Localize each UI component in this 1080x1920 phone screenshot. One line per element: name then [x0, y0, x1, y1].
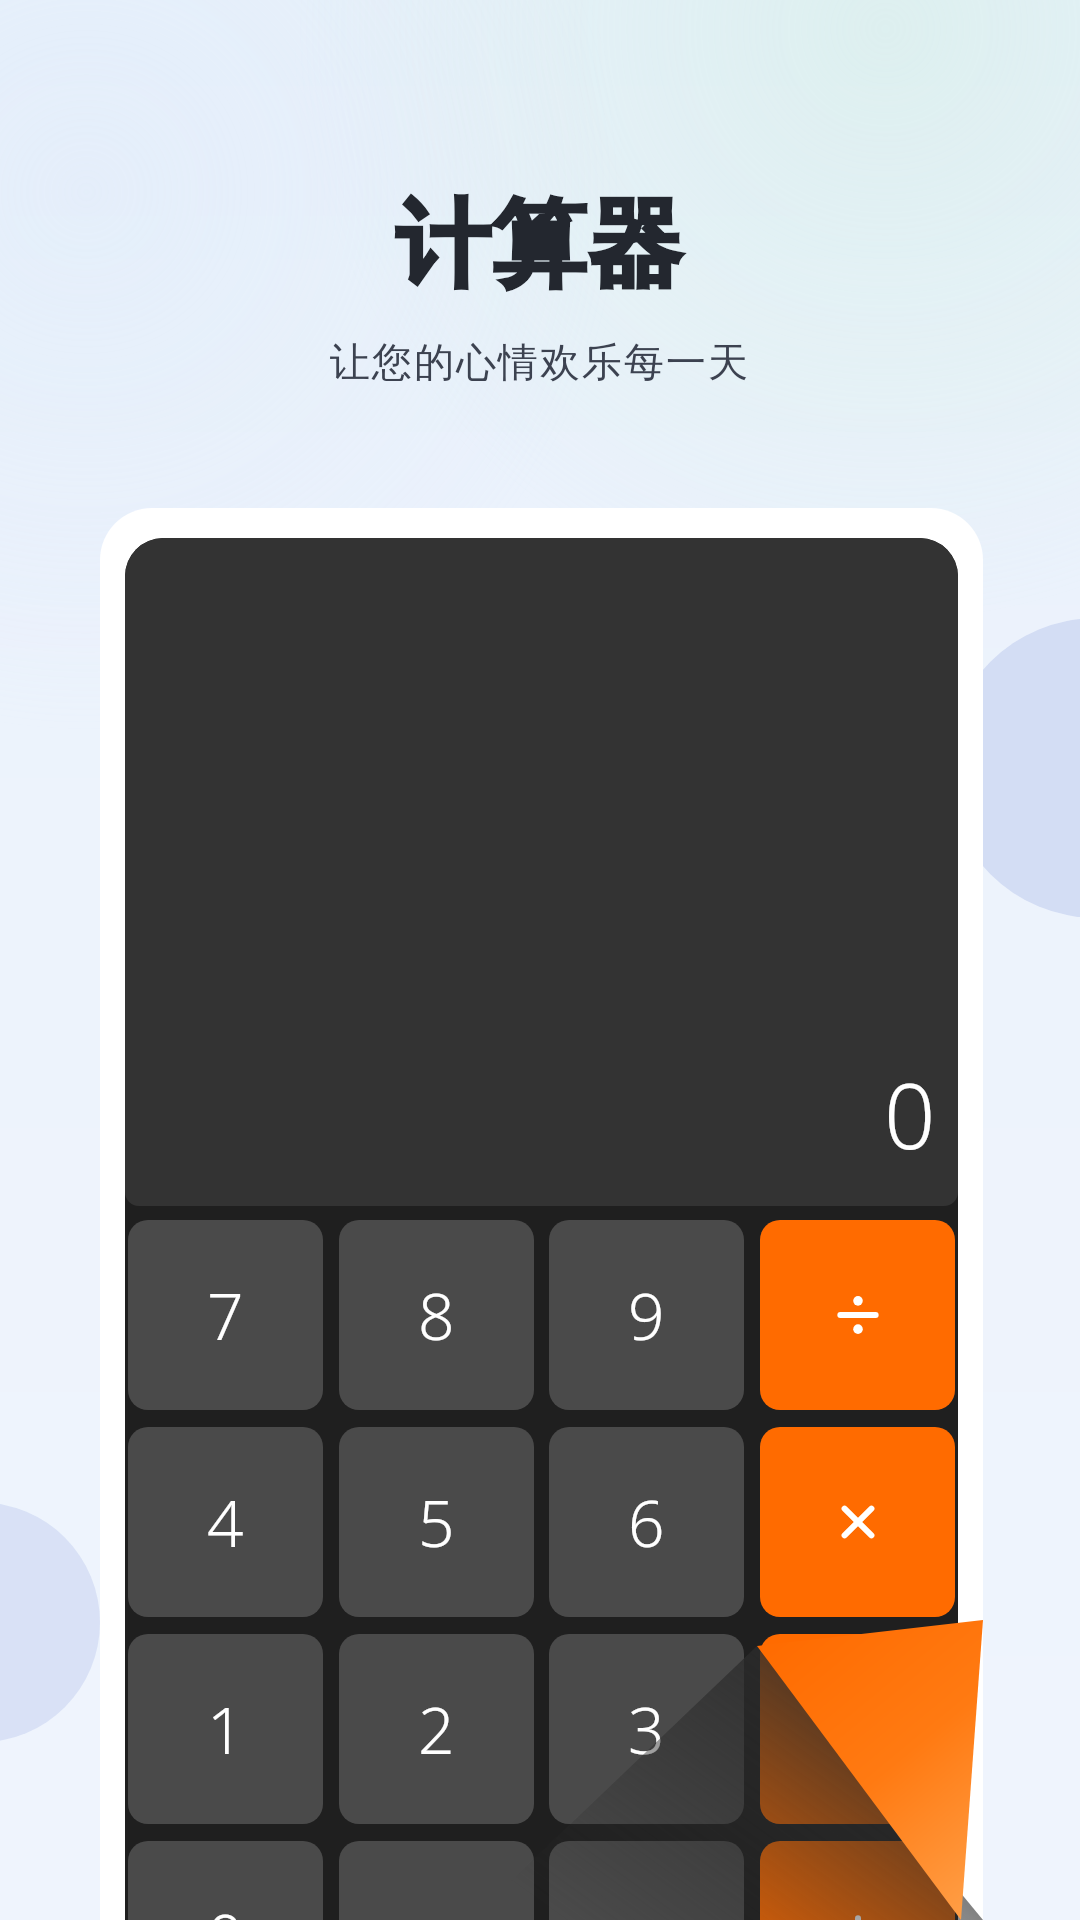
button[interactable]: Subtract	[760, 1634, 955, 1824]
staticText: 6	[628, 1479, 665, 1566]
staticText: 9	[628, 1272, 665, 1359]
button[interactable]: 5	[339, 1427, 534, 1617]
button[interactable]: 2	[339, 1634, 534, 1824]
button[interactable]: 3	[549, 1634, 744, 1824]
button[interactable]: 9	[549, 1220, 744, 1410]
button[interactable]: 1	[128, 1634, 323, 1824]
staticText: 3	[628, 1686, 665, 1773]
button[interactable]: 4	[128, 1427, 323, 1617]
staticText: 4	[207, 1479, 244, 1566]
button[interactable]: 8	[339, 1220, 534, 1410]
button[interactable]: =	[549, 1841, 744, 1920]
button[interactable]: 6	[549, 1427, 744, 1617]
staticText: 0	[207, 1893, 244, 1920]
button[interactable]: .	[339, 1841, 534, 1920]
staticText: 计算器	[0, 186, 1080, 1920]
button[interactable]: Multiply	[760, 1427, 955, 1617]
staticText: 7	[207, 1272, 244, 1359]
staticText: 0	[884, 1053, 936, 1176]
button[interactable]: 7	[128, 1220, 323, 1410]
staticText: 8	[418, 1272, 455, 1359]
staticText: 5	[418, 1479, 455, 1566]
staticText: 让您的心情欢乐每一天	[0, 337, 1080, 1920]
button[interactable]: 0	[128, 1841, 323, 1920]
button[interactable]: Add	[760, 1841, 955, 1920]
staticText: 1	[207, 1686, 244, 1773]
button[interactable]: Divide	[760, 1220, 955, 1410]
staticText: 2	[418, 1686, 455, 1773]
